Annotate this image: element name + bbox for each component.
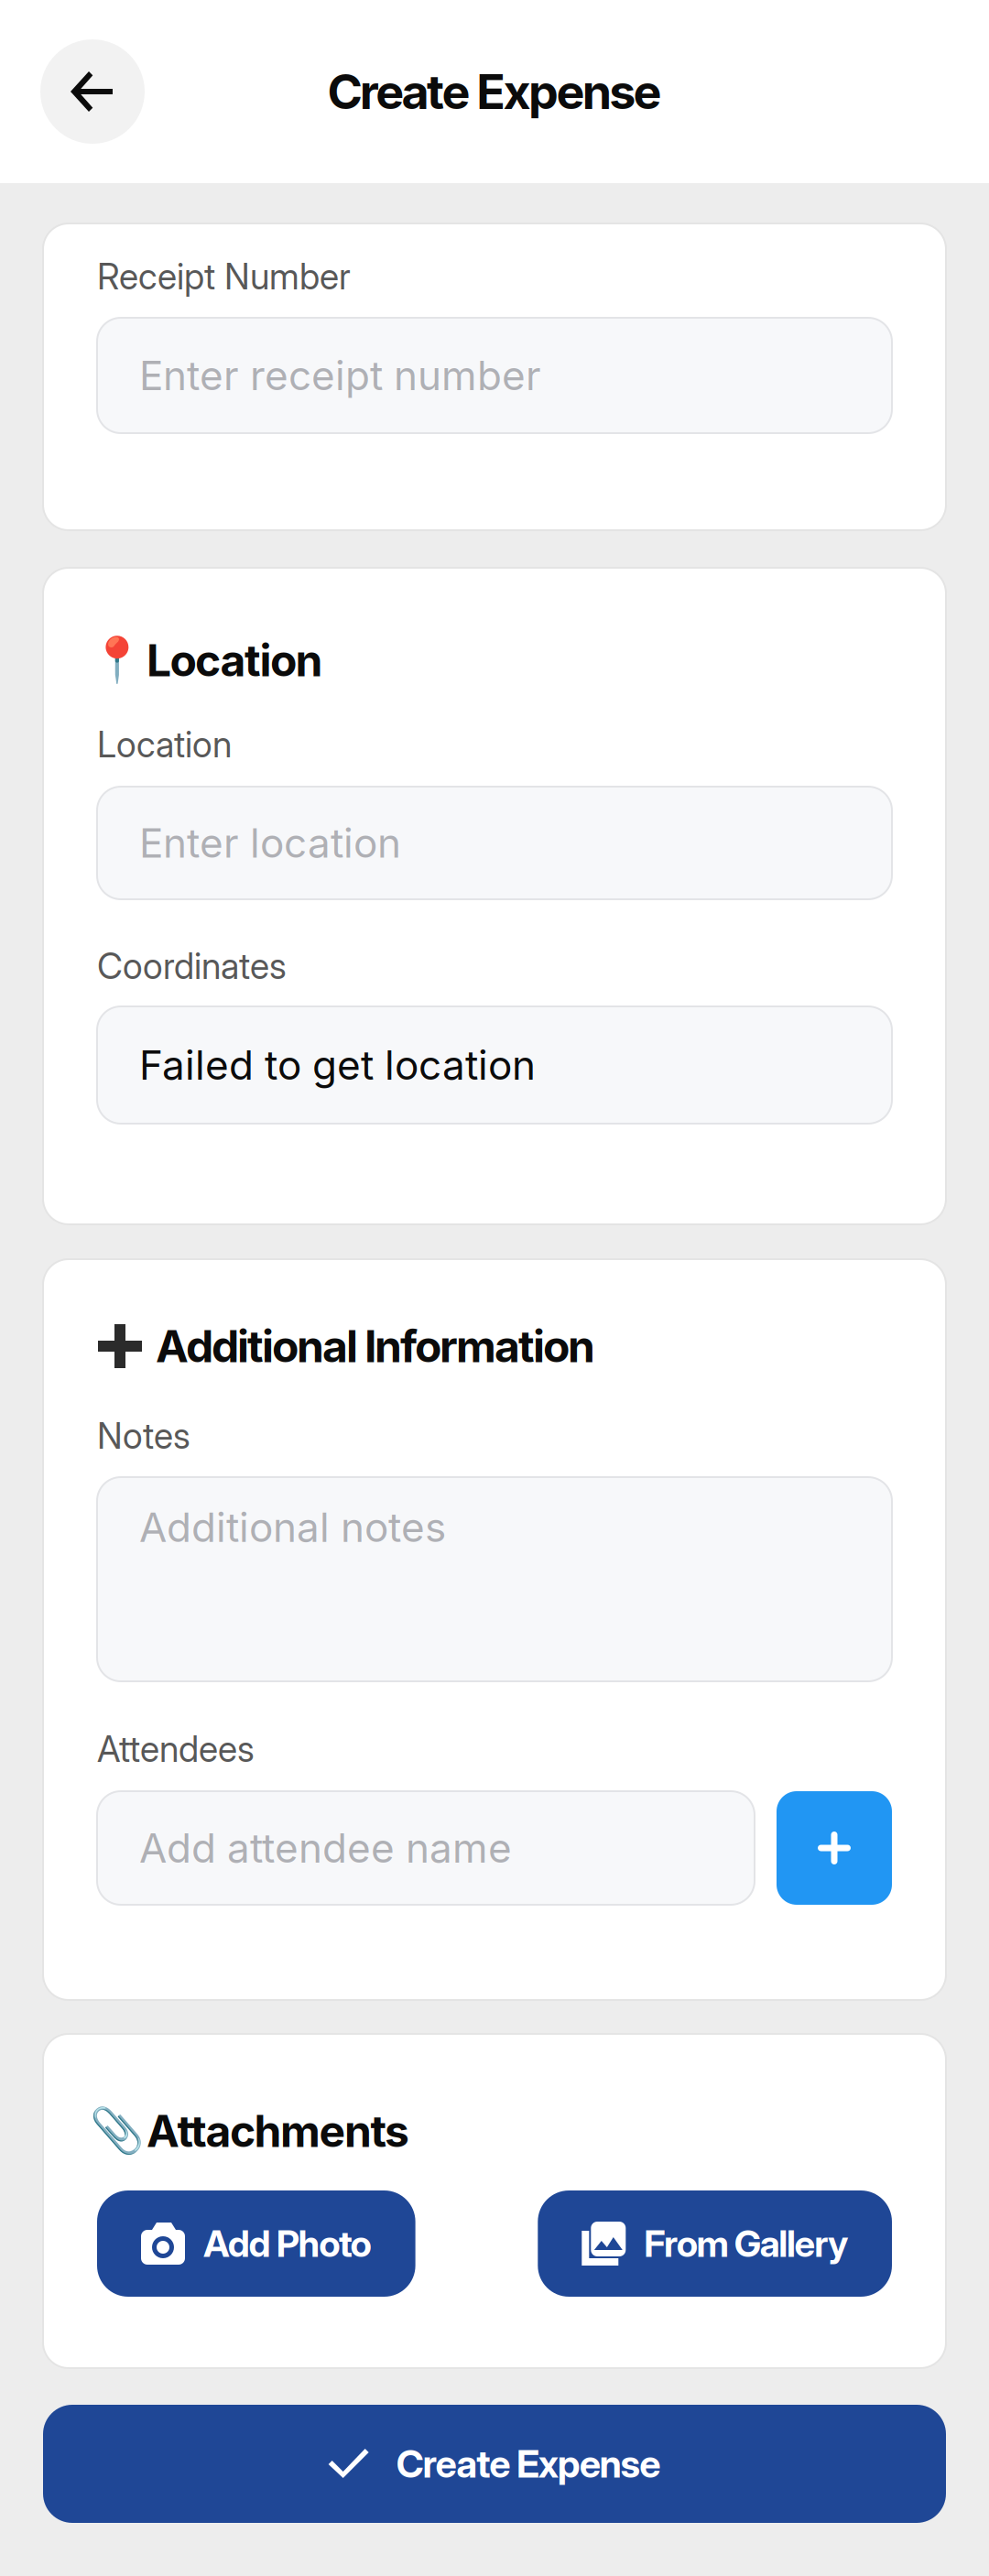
button[interactable]: Add attendee (777, 1791, 892, 1905)
staticText: Additional Information (156, 1320, 595, 1373)
button[interactable]: Enter location (97, 787, 892, 899)
staticText: Location (97, 723, 232, 766)
staticText: 📎 (90, 2105, 145, 2157)
staticText: Additional notes (139, 1503, 446, 1551)
button[interactable]: Back (40, 39, 145, 144)
staticText: Enter receipt number (139, 351, 541, 400)
staticText: Coordinates (97, 945, 287, 988)
button[interactable]: Enter receipt number (97, 318, 892, 433)
staticText: Receipt Number (97, 255, 351, 298)
staticText: Failed to get location (139, 1041, 536, 1089)
staticText: Attachments (147, 2104, 409, 2158)
staticText: 📍 (90, 635, 145, 686)
staticText: Attendees (97, 1728, 255, 1771)
staticText: Location (147, 634, 323, 687)
button[interactable]: Additional notes (97, 1477, 892, 1681)
button[interactable]: Add attendee name (97, 1791, 755, 1905)
staticText: From Gallery (644, 2221, 848, 2266)
staticText: Create Expense (327, 63, 662, 120)
staticText: Notes (97, 1414, 190, 1457)
staticText: Add attendee name (139, 1824, 512, 1872)
button[interactable]: From Gallery (538, 2190, 892, 2297)
staticText: Enter location (139, 819, 401, 867)
staticText: Add Photo (203, 2221, 371, 2266)
button[interactable]: Failed to get location (97, 1006, 892, 1124)
button[interactable]: Create Expense (43, 2405, 946, 2523)
button[interactable]: Add Photo (97, 2190, 415, 2297)
staticText: Create Expense (396, 2441, 661, 2487)
